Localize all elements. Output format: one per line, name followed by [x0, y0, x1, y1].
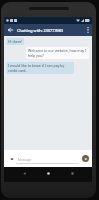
button[interactable]: Message — [16, 153, 79, 165]
button[interactable]: Send — [82, 155, 89, 162]
button[interactable]: Welcome to our website, how may I help y… — [26, 47, 89, 59]
staticText: Chatting with: 230773983 — [17, 28, 64, 33]
button[interactable]: Hi there! — [6, 38, 24, 45]
button[interactable]: Recent apps — [60, 169, 84, 177]
button[interactable]: Back — [12, 169, 36, 177]
button[interactable]: More options — [84, 24, 92, 36]
button[interactable]: Home — [36, 169, 60, 177]
staticText: Hi there! — [8, 39, 22, 44]
button[interactable]: I would like to know if I can pay by cre… — [6, 62, 74, 74]
staticText: Message — [18, 158, 32, 162]
button[interactable]: Back — [4, 24, 17, 36]
staticText: I would like to know if I can pay by cre… — [8, 63, 72, 73]
staticText: Welcome to our website, how may I help y… — [28, 48, 87, 58]
button[interactable]: Add attachment — [8, 153, 16, 165]
